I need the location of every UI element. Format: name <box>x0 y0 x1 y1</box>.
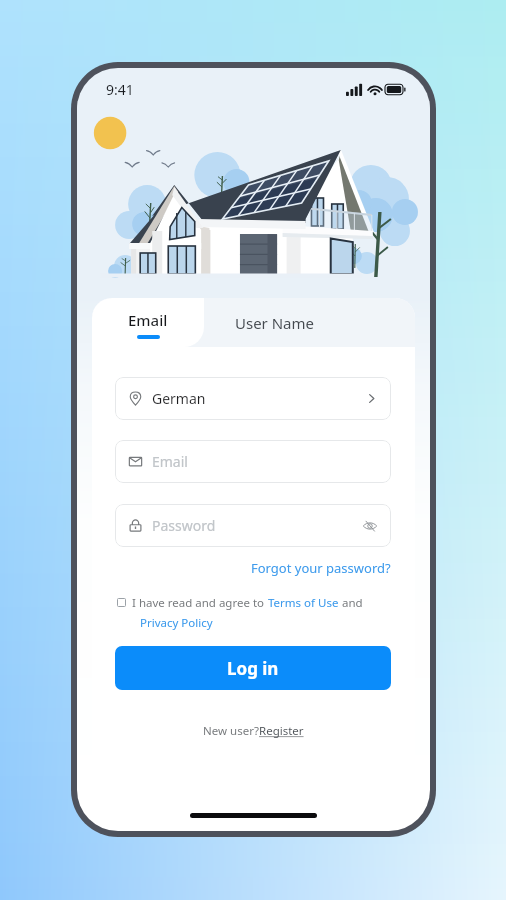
staticText: Terms of Use <box>268 595 339 611</box>
button[interactable]: Show password <box>362 518 378 534</box>
staticText: Email <box>128 310 168 330</box>
staticText: German <box>152 389 206 408</box>
button[interactable]: User Name <box>219 298 331 347</box>
staticText: Forgot your password? <box>251 559 391 577</box>
staticText: Privacy Policy <box>140 615 213 631</box>
button[interactable]: Log in <box>115 646 391 690</box>
staticText: I have read and agree to <box>132 595 268 611</box>
button[interactable]: Email <box>92 298 204 347</box>
staticText: Register <box>259 723 304 739</box>
button[interactable]: Email <box>115 440 391 483</box>
staticText: Log in <box>227 657 279 680</box>
button[interactable]: Agree to terms and privacy policy <box>117 598 126 607</box>
staticText: 9:41 <box>106 80 134 99</box>
staticText: Email <box>152 452 188 471</box>
button[interactable]: Privacy Policy <box>140 615 213 631</box>
button[interactable]: German <box>115 377 391 420</box>
staticText: User Name <box>235 313 315 333</box>
button[interactable]: Register <box>259 723 304 739</box>
staticText: New user? <box>203 723 259 739</box>
staticText: Password <box>152 516 216 535</box>
button[interactable]: Forgot your password? <box>251 559 391 577</box>
staticText: and <box>339 595 363 611</box>
button[interactable]: Password <box>115 504 391 547</box>
